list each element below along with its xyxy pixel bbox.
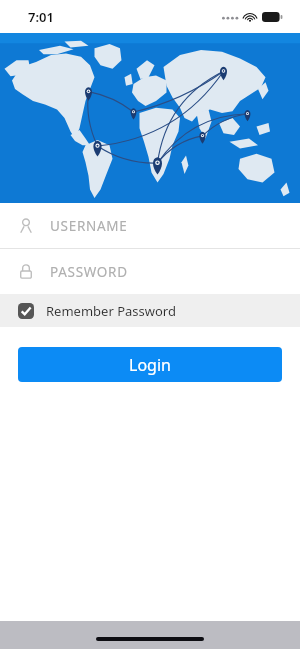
staticText: USERNAME — [50, 217, 128, 235]
button[interactable]: Remember Password — [0, 294, 300, 327]
staticText: Remember Password — [46, 302, 176, 320]
button[interactable]: USERNAME — [0, 203, 300, 248]
staticText: PASSWORD — [50, 263, 128, 281]
button[interactable]: PASSWORD — [0, 249, 300, 294]
staticText: Login — [129, 354, 171, 376]
button[interactable]: Login — [18, 347, 282, 382]
staticText: 7:01 — [28, 8, 54, 26]
